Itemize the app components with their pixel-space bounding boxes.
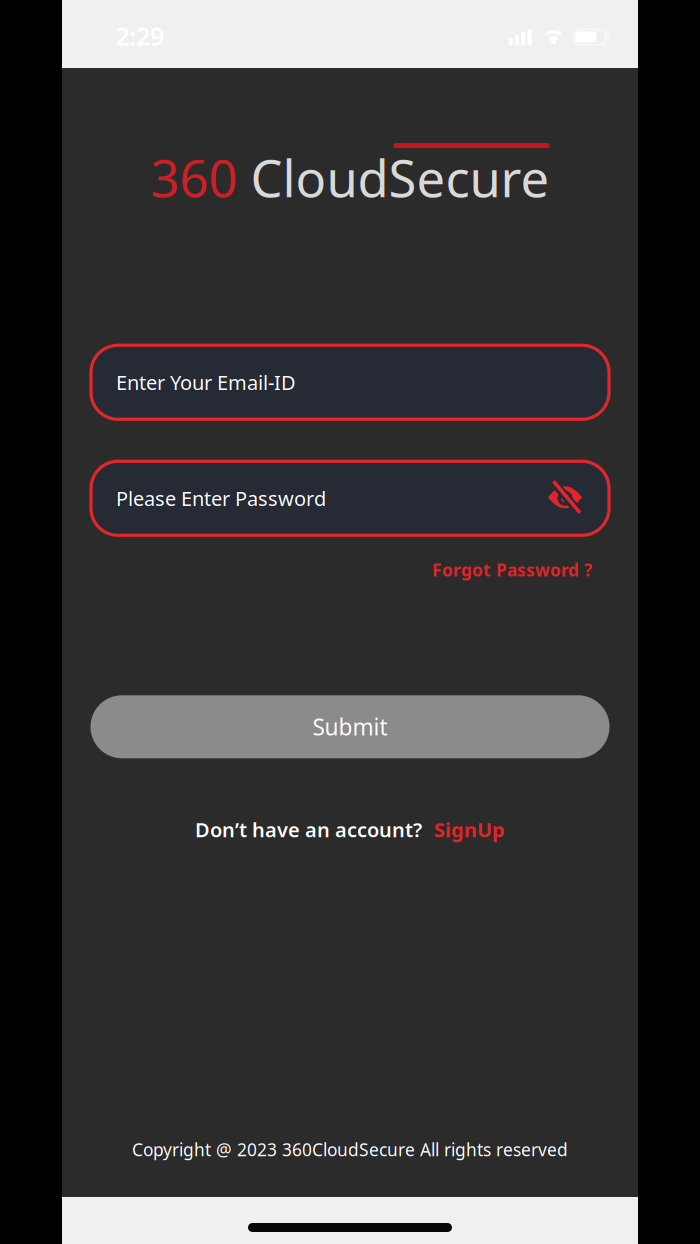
button[interactable]: Forgot Password ? (432, 558, 592, 581)
button[interactable]: Submit (90, 695, 609, 758)
staticText: Enter Your Email-ID (116, 369, 296, 396)
staticText: 360 (150, 144, 250, 211)
staticText: Submit (312, 712, 387, 742)
staticText: Don’t have an account? (195, 816, 422, 843)
staticText: Forgot Password ? (432, 558, 592, 581)
button[interactable]: SignUp (434, 816, 505, 843)
staticText: Please Enter Password (116, 485, 326, 512)
staticText: Copyright @ 2023 360CloudSecure All righ… (132, 1138, 568, 1161)
staticText: 2:29 (115, 19, 164, 53)
staticText: SignUp (434, 816, 505, 843)
button[interactable]: Enter Your Email-ID (91, 345, 609, 419)
button[interactable]: Show password (548, 481, 582, 515)
staticText: CloudSecure (250, 144, 549, 211)
button[interactable]: Please Enter Password (91, 461, 609, 535)
